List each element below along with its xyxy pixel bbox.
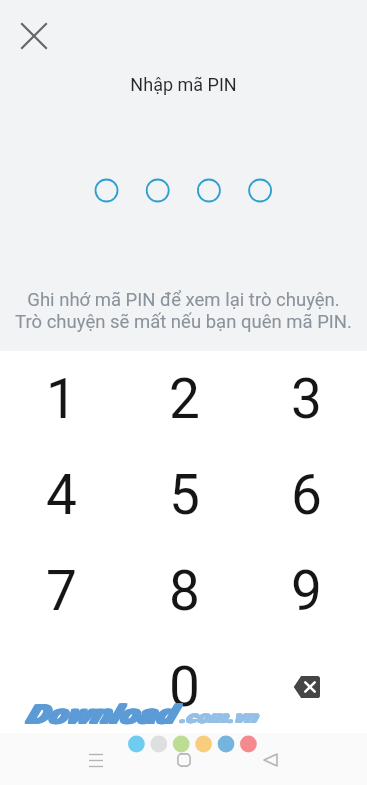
staticText: 1 xyxy=(46,367,77,431)
staticText: Trò chuyện sẽ mất nếu bạn quên mã PIN. xyxy=(15,311,352,333)
staticText: 7 xyxy=(46,559,77,623)
button[interactable]: 6 xyxy=(245,447,367,543)
button[interactable]: 9 xyxy=(245,543,367,639)
other: Delete xyxy=(293,676,320,698)
button[interactable]: 3 xyxy=(245,351,367,447)
button[interactable]: Recents xyxy=(76,740,116,780)
staticText: 2 xyxy=(169,367,200,431)
staticText: Ghi nhớ mã PIN để xem lại trò chuyện. xyxy=(27,289,340,311)
button[interactable] xyxy=(0,639,123,735)
staticText: 3 xyxy=(291,367,322,431)
button[interactable]: 8 xyxy=(123,543,245,639)
staticText: 4 xyxy=(46,463,77,527)
button[interactable]: Delete xyxy=(245,639,367,735)
staticText: 0 xyxy=(169,655,200,719)
button[interactable]: Back xyxy=(250,740,290,780)
staticText: 6 xyxy=(291,463,322,527)
button[interactable]: 4 xyxy=(0,447,123,543)
button[interactable]: Home xyxy=(164,740,204,780)
staticText: 8 xyxy=(169,559,200,623)
button[interactable]: Close xyxy=(18,20,50,52)
staticText: 9 xyxy=(291,559,322,623)
button[interactable]: 7 xyxy=(0,543,123,639)
button[interactable]: 1 xyxy=(0,351,123,447)
staticText: Nhập mã PIN xyxy=(0,74,367,95)
button[interactable]: 2 xyxy=(123,351,245,447)
button[interactable]: 0 xyxy=(123,639,245,735)
staticText: 5 xyxy=(169,463,200,527)
button[interactable]: 5 xyxy=(123,447,245,543)
